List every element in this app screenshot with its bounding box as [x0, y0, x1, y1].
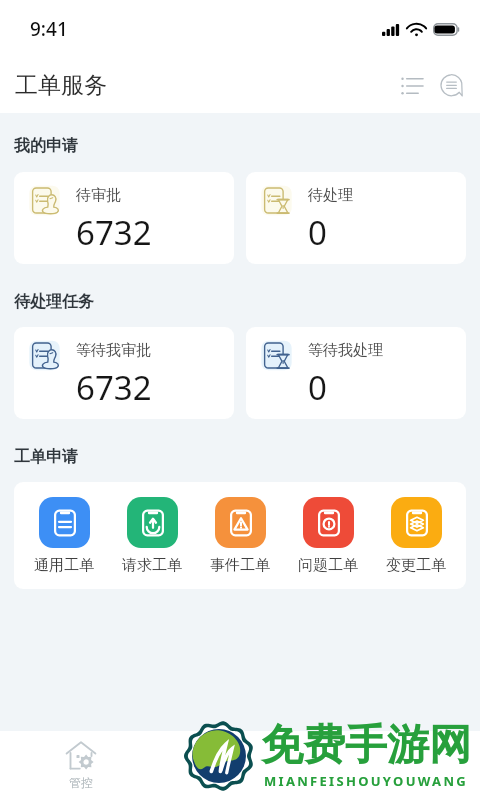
staticText: 事件工单	[210, 556, 270, 575]
button[interactable]: 通用工单	[26, 497, 102, 575]
button[interactable]: 事件工单	[202, 497, 278, 575]
staticText: 请求工单	[122, 556, 182, 575]
staticText: 0	[308, 210, 327, 255]
staticText: 问题工单	[298, 556, 358, 575]
staticText: 待审批	[76, 186, 121, 205]
button[interactable]: 列表	[392, 66, 432, 106]
button[interactable]	[321, 731, 477, 791]
button[interactable]: 问题工单	[290, 497, 366, 575]
staticText: 工单申请	[14, 447, 78, 467]
staticText: 0	[308, 365, 327, 410]
staticText: 6732	[76, 365, 152, 410]
button[interactable]: 变更工单	[378, 497, 454, 575]
button[interactable]: 消息	[432, 66, 472, 106]
staticText: 管控	[69, 775, 93, 790]
staticText: 等待我处理	[308, 341, 383, 360]
button[interactable]: 等待我审批	[14, 327, 234, 419]
button[interactable]: 待处理	[246, 172, 466, 264]
staticText: 6732	[76, 210, 152, 255]
staticText: 待处理任务	[14, 292, 94, 312]
staticText: MIANFEISHOUYOUWANG	[264, 772, 468, 790]
staticText: 9:41	[30, 16, 68, 42]
button[interactable]: 管控	[3, 731, 159, 790]
staticText: 免费手游网	[261, 719, 471, 772]
button[interactable]: 待审批	[14, 172, 234, 264]
staticText: 待处理	[308, 186, 353, 205]
button[interactable]: 请求工单	[114, 497, 190, 575]
staticText: 等待我审批	[76, 341, 151, 360]
staticText: 通用工单	[34, 556, 94, 575]
staticText: 我的申请	[14, 136, 78, 156]
staticText: 变更工单	[386, 556, 446, 575]
button[interactable]: 等待我处理	[246, 327, 466, 419]
staticText: 工单服务	[15, 71, 107, 100]
button[interactable]	[162, 731, 318, 791]
